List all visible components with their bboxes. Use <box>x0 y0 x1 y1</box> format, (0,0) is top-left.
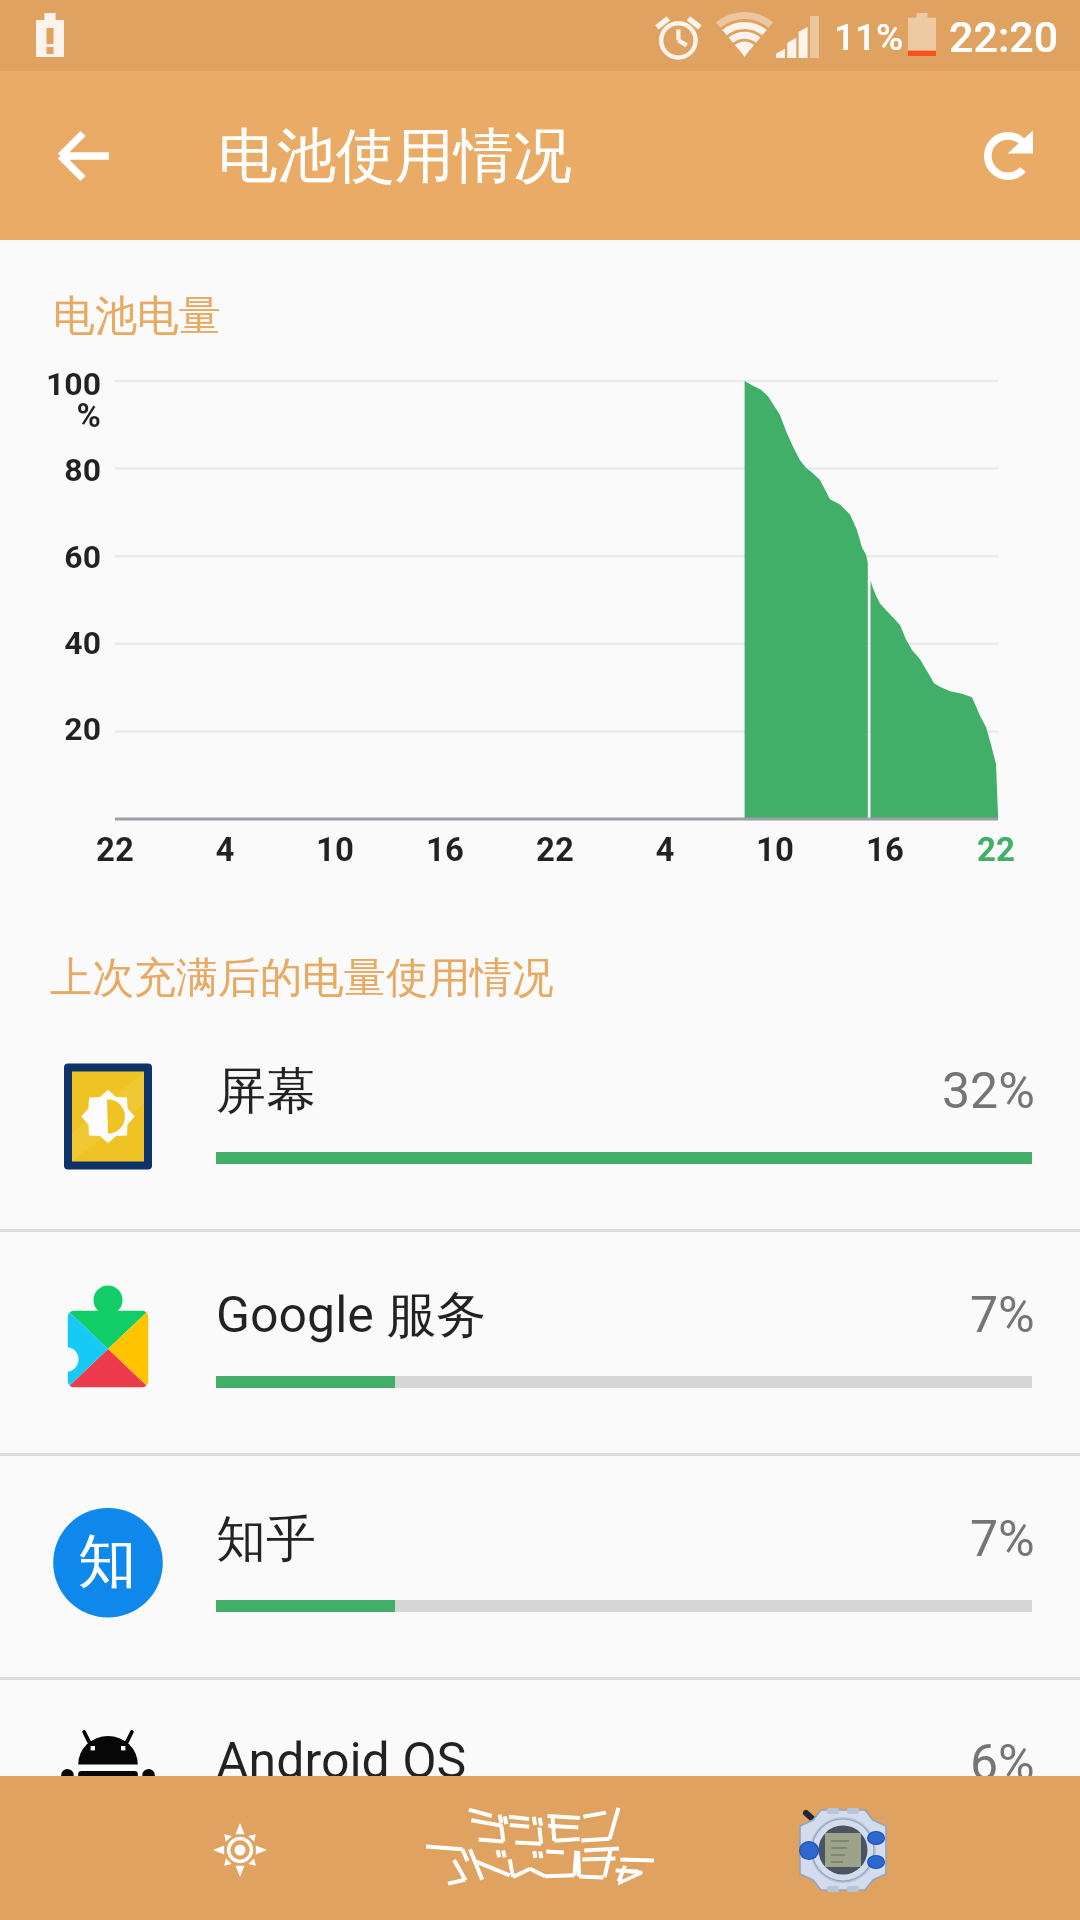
staticText: 32% <box>942 1062 1035 1121</box>
staticText: 22 <box>936 830 1056 869</box>
button[interactable]: Refresh <box>960 108 1056 204</box>
staticText: 20 <box>0 710 101 748</box>
staticText: 16 <box>825 830 945 869</box>
staticText: 6% <box>970 1734 1035 1793</box>
staticText: 100 <box>0 365 101 403</box>
button[interactable]: Android OS <box>0 1680 1080 1901</box>
staticText: 80 <box>0 451 101 489</box>
staticText: 4 <box>605 830 725 869</box>
button[interactable]: Google 服务 <box>0 1232 1080 1453</box>
button[interactable]: Back <box>36 108 132 204</box>
button[interactable]: 知 <box>0 1456 1080 1677</box>
staticText: 电池使用情况 <box>218 119 572 193</box>
staticText: 7% <box>970 1510 1035 1569</box>
staticText: 屏幕 <box>216 1060 316 1123</box>
staticText: Google 服务 <box>216 1284 487 1347</box>
button[interactable]: 屏幕 <box>0 1008 1080 1229</box>
staticText: 10 <box>275 830 395 869</box>
staticText: 22 <box>495 830 615 869</box>
staticText: 上次充满后的电量使用情况 <box>50 952 554 1005</box>
staticText: 4 <box>165 830 285 869</box>
staticText: 11% <box>834 16 904 59</box>
staticText: 7% <box>970 1286 1035 1345</box>
staticText: 40 <box>0 624 101 662</box>
button[interactable]: Digimon Adventure <box>418 1799 665 1892</box>
staticText: 60 <box>0 538 101 576</box>
staticText: 22:20 <box>949 12 1059 62</box>
staticText: 知 <box>78 1525 136 1598</box>
staticText: Android OS <box>216 1732 467 1791</box>
staticText: % <box>0 396 101 435</box>
staticText: 电池电量 <box>53 290 221 343</box>
staticText: 22 <box>55 830 175 869</box>
button[interactable]: Brightness <box>186 1796 294 1904</box>
staticText: 16 <box>385 830 505 869</box>
button[interactable]: Digivice <box>783 1790 903 1910</box>
staticText: 知乎 <box>216 1508 316 1571</box>
staticText: 10 <box>715 830 835 869</box>
